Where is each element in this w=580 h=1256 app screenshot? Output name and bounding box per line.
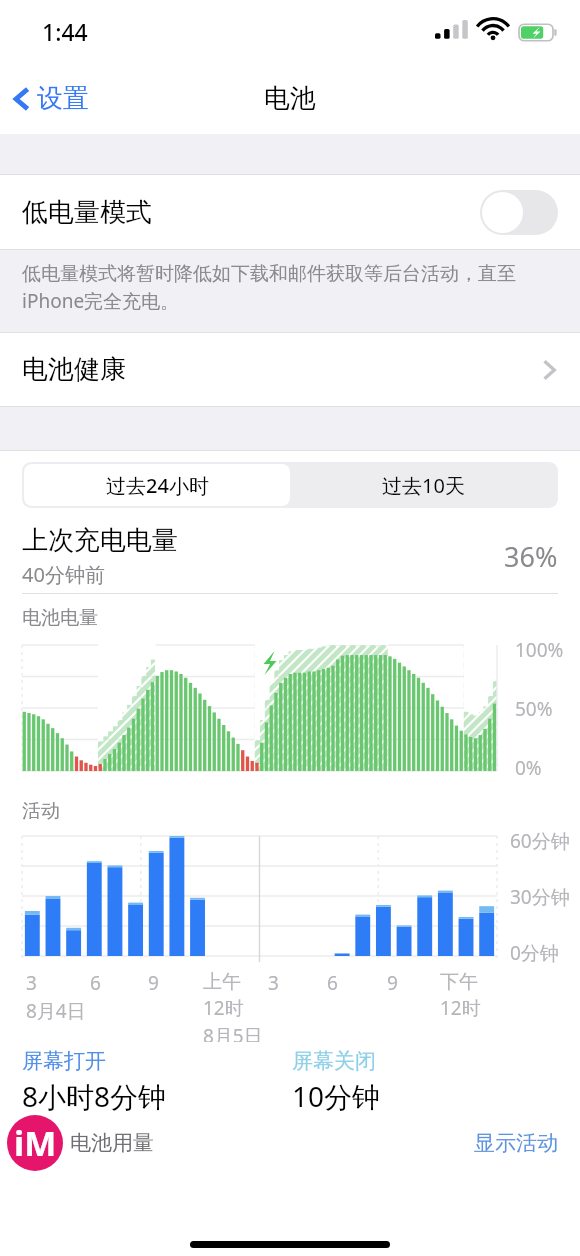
staticText: 电池 bbox=[264, 82, 316, 115]
staticText: 屏幕打开 bbox=[22, 1048, 106, 1074]
staticText: 8月5日 bbox=[203, 1023, 263, 1049]
staticText: 过去10天 bbox=[382, 472, 465, 499]
staticText: 6 bbox=[90, 970, 101, 996]
button[interactable]: 过去24小时 bbox=[24, 464, 290, 506]
staticText: 9 bbox=[148, 970, 159, 996]
button[interactable]: 低电量模式 bbox=[0, 175, 580, 249]
button[interactable]: 电池健康 bbox=[0, 333, 580, 406]
staticText: 30分钟 bbox=[510, 884, 570, 910]
staticText: 40分钟前 bbox=[22, 561, 105, 588]
staticText: 上午 12时 bbox=[203, 970, 244, 1020]
staticText: 1:44 bbox=[42, 16, 88, 47]
staticText: 电池电量 bbox=[22, 606, 98, 630]
staticText: 10分钟 bbox=[292, 1077, 381, 1115]
staticText: 设置 bbox=[37, 82, 89, 115]
staticText: 上次充电电量 bbox=[22, 524, 178, 557]
staticText: iM bbox=[14, 1120, 57, 1166]
staticText: 低电量模式 bbox=[22, 196, 152, 229]
staticText: 8小时8分钟 bbox=[22, 1077, 167, 1115]
staticText: 100% bbox=[515, 637, 564, 663]
staticText: 60分钟 bbox=[510, 828, 570, 854]
staticText: 低电量模式将暂时降低如下载和邮件获取等后台活动，直至 iPhone完全充电。 bbox=[22, 262, 516, 314]
staticText: 8月4日 bbox=[26, 998, 86, 1024]
staticText: 电池用量 bbox=[70, 1130, 154, 1156]
staticText: 屏幕关闭 bbox=[292, 1048, 376, 1074]
staticText: 0% bbox=[515, 755, 542, 781]
staticText: 下午 12时 bbox=[440, 970, 481, 1020]
staticText: 过去24小时 bbox=[106, 472, 209, 499]
staticText: 36% bbox=[504, 538, 558, 575]
staticText: 3 bbox=[26, 970, 37, 996]
button[interactable]: 设置 bbox=[0, 74, 101, 123]
button[interactable]: 低电量模式开关 bbox=[480, 190, 558, 235]
staticText: 50% bbox=[515, 696, 553, 722]
staticText: 电池健康 bbox=[22, 353, 126, 386]
staticText: 6 bbox=[327, 970, 338, 996]
staticText: 活动 bbox=[22, 799, 60, 823]
staticText: 3 bbox=[268, 970, 279, 996]
button[interactable]: 过去10天 bbox=[290, 464, 556, 506]
staticText: 0分钟 bbox=[510, 940, 559, 966]
button[interactable]: 显示活动 bbox=[474, 1130, 580, 1156]
staticText: 9 bbox=[387, 970, 398, 996]
